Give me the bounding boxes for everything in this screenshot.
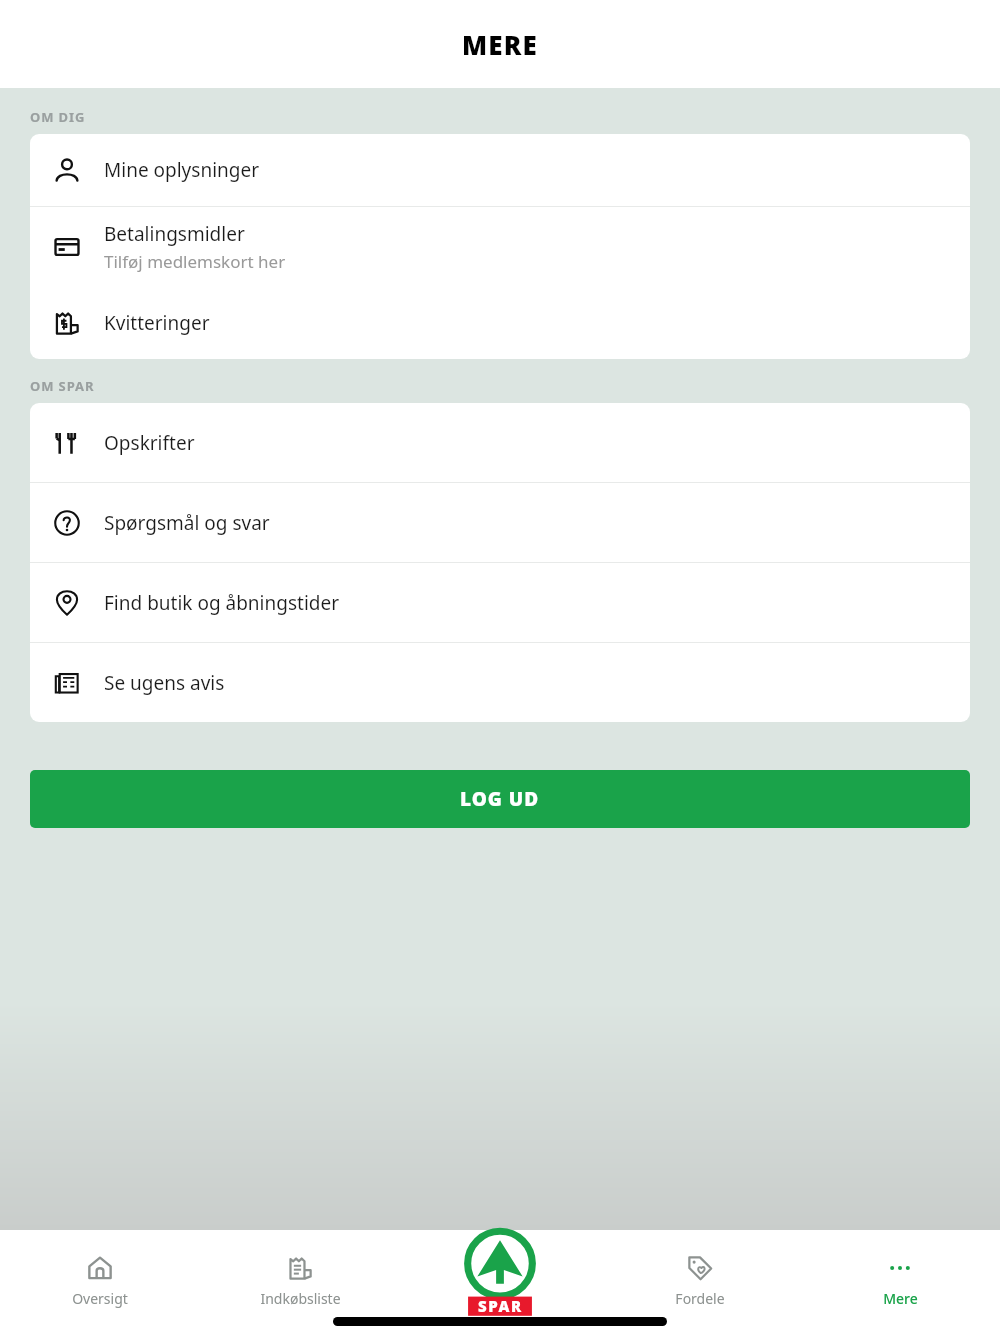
staticText: LOG UD	[460, 786, 540, 812]
staticText: Se ugens avis	[104, 670, 225, 696]
staticText: Spørgsmål og svar	[104, 510, 270, 536]
staticText: Tilføj medlemskort her	[104, 250, 286, 273]
button[interactable]: SPAR	[458, 1226, 542, 1322]
staticText: Mere	[883, 1289, 918, 1308]
button[interactable]: Mine oplysninger	[30, 134, 970, 206]
staticText: OM DIG	[30, 108, 86, 126]
staticText: Mine oplysninger	[104, 157, 260, 183]
button[interactable]: LOG UD	[30, 770, 970, 828]
staticText: Indkøbsliste	[260, 1289, 341, 1308]
staticText: Kvitteringer	[104, 310, 210, 336]
staticText: Opskrifter	[104, 430, 195, 456]
button[interactable]: Spørgsmål og svar	[30, 483, 970, 562]
staticText: SPAR	[478, 1296, 523, 1316]
button[interactable]: Indkøbsliste	[200, 1230, 400, 1334]
button[interactable]: Fordele	[600, 1230, 800, 1334]
button[interactable]: Se ugens avis	[30, 643, 970, 722]
staticText: Betalingsmidler	[104, 221, 245, 247]
staticText: Fordele	[675, 1289, 725, 1308]
button[interactable]: Opskrifter	[30, 403, 970, 482]
staticText: MERE	[462, 27, 539, 62]
button[interactable]: Find butik og åbningstider	[30, 563, 970, 642]
staticText: Oversigt	[72, 1289, 128, 1308]
button[interactable]: Oversigt	[0, 1230, 200, 1334]
staticText: Find butik og åbningstider	[104, 590, 340, 616]
button[interactable]: Mere	[800, 1230, 1000, 1334]
button[interactable]: Kvitteringer	[30, 287, 970, 359]
button[interactable]: Betalingsmidler	[30, 207, 970, 287]
staticText: OM SPAR	[30, 377, 95, 395]
